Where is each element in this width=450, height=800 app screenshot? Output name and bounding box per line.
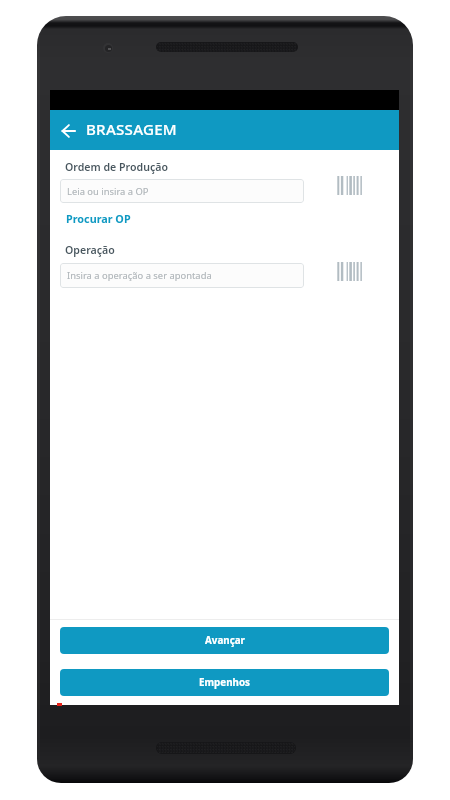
button[interactable]: Scan barcode — [335, 260, 367, 286]
button[interactable]: Procurar OP — [66, 211, 131, 226]
button[interactable]: Avançar — [60, 627, 389, 654]
staticText: Procurar OP — [66, 211, 131, 226]
staticText: Operação — [65, 243, 115, 257]
button[interactable]: Insira a operação a ser apontada — [60, 263, 304, 288]
button[interactable]: Leia ou insira a OP — [60, 179, 304, 203]
staticText: Ordem de Produção — [65, 160, 168, 174]
button[interactable]: Back — [53, 116, 84, 147]
button[interactable]: Empenhos — [60, 669, 389, 696]
staticText: Empenhos — [199, 676, 250, 689]
staticText: Insira a operação a ser apontada — [67, 269, 212, 282]
staticText: BRASSAGEM — [86, 119, 177, 140]
staticText: Leia ou insira a OP — [67, 185, 149, 198]
button[interactable]: Scan barcode — [335, 174, 367, 200]
staticText: Avançar — [205, 634, 245, 647]
